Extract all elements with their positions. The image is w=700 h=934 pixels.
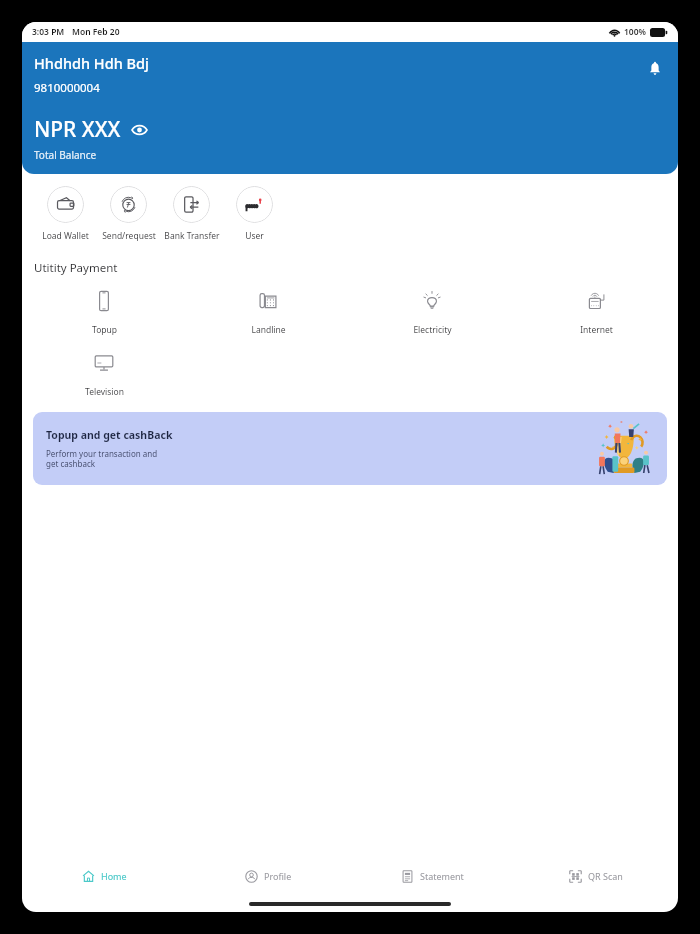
button[interactable]: QR Scan [514,857,678,895]
staticText: Load Wallet [42,230,89,242]
button[interactable]: User [223,186,286,242]
staticText: Mon Feb 20 [72,26,120,38]
staticText: Landline [251,324,286,336]
button[interactable]: Internet [514,290,678,336]
staticText: Perform your transaction and get cashbac… [46,448,158,469]
staticText: Profile [264,870,292,882]
button[interactable]: Landline [186,290,350,336]
button[interactable]: Television [22,352,186,398]
staticText: QR Scan [588,870,623,882]
staticText: Send/request [102,230,156,242]
button[interactable]: Notifications [642,56,668,82]
button[interactable]: Statement [350,857,514,895]
staticText: Television [85,386,124,398]
staticText: Utitity Payment [34,260,118,276]
staticText: Statement [420,870,464,882]
staticText: NPR XXX [34,115,121,144]
staticText: Internet [580,324,613,336]
staticText: Electricity [413,324,452,336]
staticText: Total Balance [34,148,97,162]
button[interactable]: Send/request [97,186,160,242]
button[interactable]: Bank Transfer [160,186,223,242]
button[interactable]: Topup and get cashBack [33,412,667,485]
staticText: 9810000004 [34,80,100,96]
staticText: User [245,230,264,242]
staticText: Bank Transfer [164,230,220,242]
button[interactable]: Home [22,857,186,895]
staticText: 3:03 PM [32,26,65,38]
staticText: Hhdhdh Hdh Bdj [34,53,149,73]
button[interactable]: Profile [186,857,350,895]
button[interactable]: Electricity [350,290,514,336]
button[interactable]: Toggle balance visibility [130,121,148,139]
staticText: Topup and get cashBack [46,428,173,442]
button[interactable]: Topup [22,290,186,336]
staticText: 100% [624,26,647,38]
staticText: Home [101,870,127,882]
staticText: Topup [92,324,117,336]
button[interactable]: Load Wallet [34,186,97,242]
